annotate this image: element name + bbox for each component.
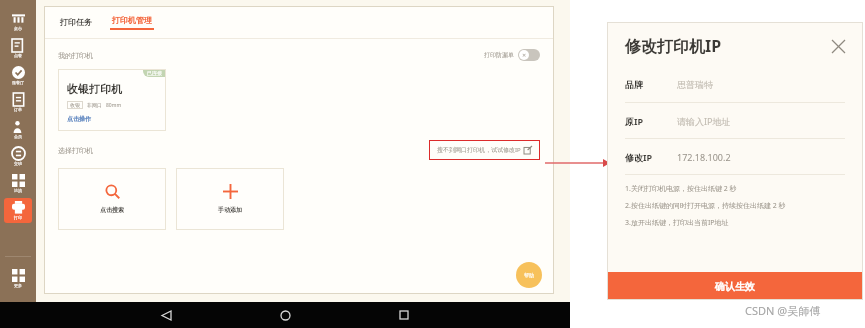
staticText: 1.关闭打印机电源，按住出纸键 2 秒 [625, 184, 737, 194]
staticText: 请输入IP地址 [677, 115, 731, 127]
staticText: 点餐 [14, 53, 22, 58]
staticText: 更多 [14, 283, 22, 288]
button[interactable]: 搜不到网口打印机，试试修改IP [437, 146, 532, 154]
staticText: 微餐厅 [12, 80, 24, 85]
staticText: 打印 [14, 215, 22, 220]
button[interactable]: 打印防漏单开关 [518, 49, 540, 61]
staticText: CSDN @吴師傅 [745, 303, 821, 318]
staticText: 已连接 [147, 70, 162, 76]
staticText: 修改打印机IP [625, 35, 722, 57]
button[interactable]: 关闭 [827, 35, 849, 57]
staticText: 收银 [70, 102, 80, 108]
staticText: 打印机管理 [112, 15, 152, 25]
staticText: 非网口 [87, 102, 102, 108]
staticText: 会员 [14, 134, 22, 139]
staticText: 订单 [14, 107, 22, 112]
button[interactable]: 修改IP [625, 139, 863, 174]
staticText: 3.放开出纸键，打印出当前IP地址 [625, 218, 729, 228]
button[interactable]: 手动添加 [176, 168, 284, 230]
button[interactable]: 确认生效 [607, 272, 863, 300]
button[interactable]: 返回 [155, 304, 177, 326]
staticText: 收银打印机 [67, 82, 122, 96]
button[interactable]: 帮助 [516, 262, 542, 288]
button[interactable]: 微餐厅 [4, 63, 32, 88]
staticText: 手动添加 [218, 206, 242, 214]
staticText: 点击搜索 [100, 206, 124, 214]
staticText: 品牌 [625, 79, 643, 90]
button[interactable]: 点击搜索 [58, 168, 166, 230]
staticText: 打印防漏单 [484, 51, 514, 59]
button[interactable]: 最近任务 [393, 304, 415, 326]
button[interactable]: 打印 [4, 198, 32, 223]
staticText: 2.按住出纸键的同时打开电源，持续按住出纸建 2 秒 [625, 201, 786, 211]
staticText: 帮助 [524, 272, 534, 278]
button[interactable]: 已连接 [58, 69, 166, 131]
button[interactable]: 品牌 [625, 67, 863, 102]
staticText: ✕ [522, 52, 527, 58]
staticText: 选择打印机 [58, 146, 93, 155]
staticText: 点击操作 [67, 115, 91, 123]
button[interactable]: 订单 [4, 90, 32, 115]
staticText: 修改IP [625, 151, 653, 163]
staticText: 交班 [14, 161, 22, 166]
staticText: 80mm [106, 102, 122, 109]
button[interactable]: 点餐 [4, 36, 32, 61]
button[interactable]: 沽清 [4, 171, 32, 196]
button[interactable]: 桌台 [4, 9, 32, 34]
button[interactable]: 更多 [4, 266, 32, 291]
staticText: 原IP [625, 115, 644, 127]
staticText: 172.18.100.2 [677, 151, 731, 163]
staticText: 沽清 [14, 188, 22, 193]
button[interactable]: 打印机管理 [110, 15, 154, 30]
button[interactable]: 打印任务 [58, 13, 94, 31]
staticText: 思普瑞特 [677, 79, 713, 90]
staticText: 打印任务 [60, 17, 92, 27]
button[interactable]: 会员 [4, 117, 32, 142]
staticText: 桌台 [14, 26, 22, 31]
button[interactable]: 交班 [4, 144, 32, 169]
button[interactable]: 点击操作 [67, 115, 91, 123]
staticText: 搜不到网口打印机，试试修改IP [437, 146, 521, 154]
button[interactable]: 主页 [274, 304, 296, 326]
button[interactable]: 原IP [625, 103, 863, 138]
staticText: 我的打印机 [58, 51, 93, 60]
staticText: 确认生效 [715, 280, 755, 293]
